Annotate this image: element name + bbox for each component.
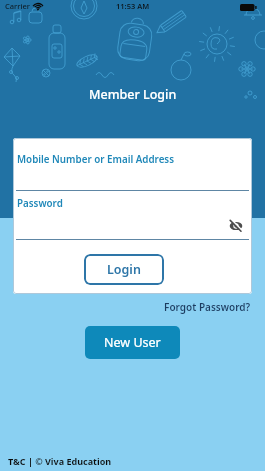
staticText: Login bbox=[107, 261, 141, 278]
button[interactable]: Password bbox=[17, 197, 63, 210]
button[interactable]: Mobile Number or Email Address bbox=[17, 153, 175, 166]
button[interactable]: T&C | © Viva Education bbox=[8, 455, 112, 467]
button[interactable]: Login bbox=[84, 254, 164, 285]
staticText: New User bbox=[104, 334, 161, 351]
button[interactable]: Forgot Password? bbox=[164, 300, 251, 314]
button[interactable]: New User bbox=[85, 326, 180, 359]
button[interactable] bbox=[229, 219, 243, 233]
staticText: Carrier bbox=[5, 1, 30, 11]
staticText: 11:53 AM bbox=[116, 1, 150, 11]
staticText: Member Login bbox=[89, 86, 177, 103]
